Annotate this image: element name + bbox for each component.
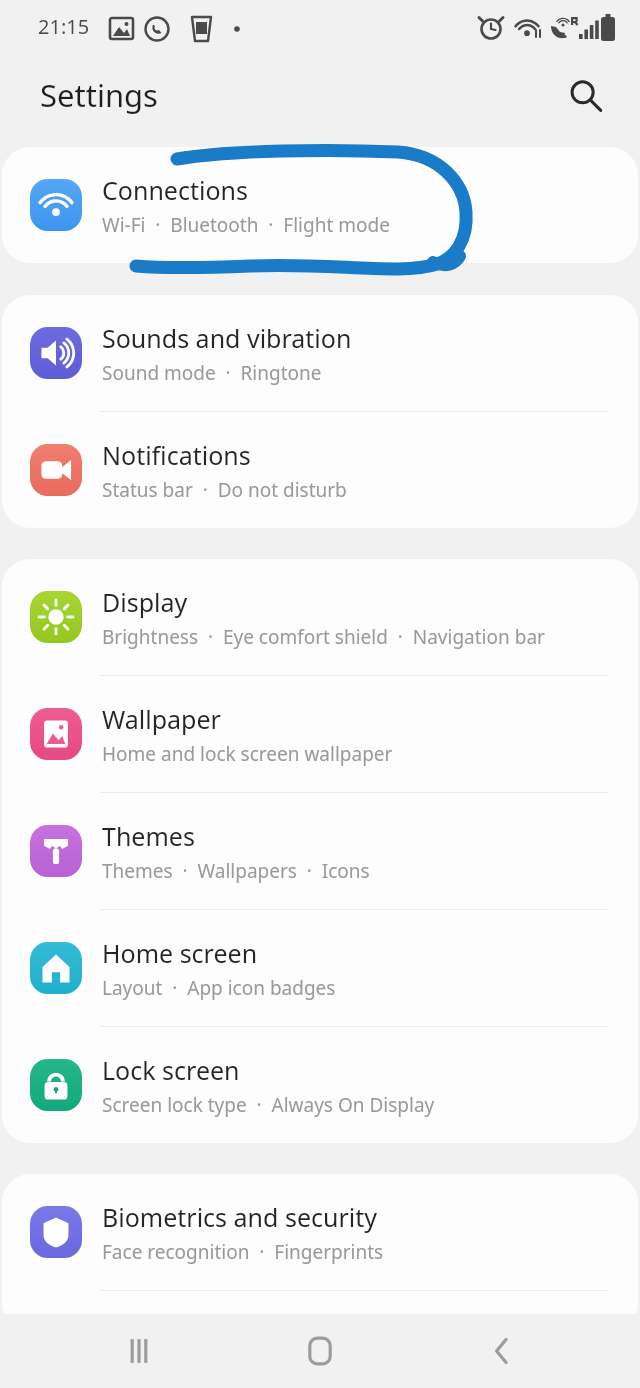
button[interactable]: Home [277, 1314, 363, 1388]
staticText: Home screen [102, 936, 258, 970]
staticText: Themes [102, 819, 195, 853]
staticText: Wi-Fi · Bluetooth · Flight mode [102, 212, 390, 238]
button[interactable]: Back [459, 1314, 545, 1388]
staticText: Wallpaper [102, 702, 221, 736]
button[interactable]: Connections [2, 147, 638, 263]
staticText: Lock screen [102, 1053, 240, 1087]
staticText: Sounds and vibration [102, 321, 352, 355]
staticText: Sound mode · Ringtone [102, 360, 322, 386]
staticText: 21:15 [38, 13, 90, 40]
button[interactable]: Notifications [2, 412, 638, 528]
staticText: Layout · App icon badges [102, 975, 336, 1001]
staticText: Connections [102, 173, 248, 207]
button[interactable]: Sounds and vibration [2, 295, 638, 411]
staticText: Home and lock screen wallpaper [102, 741, 393, 767]
button[interactable]: Lock screen [2, 1027, 638, 1143]
staticText: Brightness · Eye comfort shield · Naviga… [102, 624, 545, 650]
button[interactable]: Search [556, 66, 614, 124]
staticText: Settings [40, 74, 158, 116]
staticText: Status bar · Do not disturb [102, 477, 347, 503]
staticText: Themes · Wallpapers · Icons [102, 858, 370, 884]
staticText: Notifications [102, 438, 251, 472]
button[interactable]: Themes [2, 793, 638, 909]
button[interactable]: Home screen [2, 910, 638, 1026]
staticText: Biometrics and security [102, 1200, 378, 1234]
staticText: Face recognition · Fingerprints [102, 1239, 384, 1265]
staticText: Screen lock type · Always On Display [102, 1092, 435, 1118]
button[interactable]: Biometrics and security [2, 1174, 638, 1290]
button[interactable]: Recents [96, 1314, 182, 1388]
button[interactable]: Display [2, 559, 638, 675]
staticText: Display [102, 585, 188, 619]
button[interactable]: Wallpaper [2, 676, 638, 792]
